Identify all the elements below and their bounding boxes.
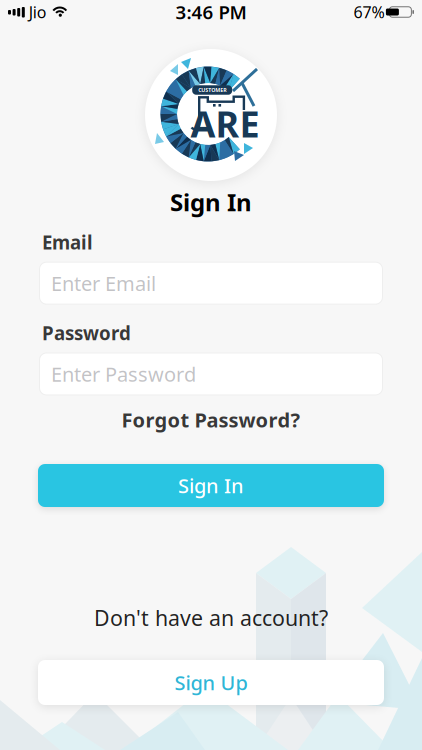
staticText: ARE (190, 100, 259, 147)
staticText: Jio (29, 1, 47, 23)
staticText: Don't have an account? (94, 604, 328, 632)
staticText: Sign In (170, 186, 252, 218)
staticText: Email (42, 230, 93, 255)
staticText: Enter Password (51, 361, 196, 387)
staticText: Sign In (178, 472, 244, 499)
staticText: Forgot Password? (121, 406, 300, 433)
staticText: Enter Email (51, 270, 156, 296)
staticText: Password (42, 321, 131, 345)
button[interactable]: Enter Email (39, 262, 383, 305)
staticText: Sign Up (174, 669, 247, 696)
staticText: 3:46 PM (175, 0, 246, 24)
staticText: 67% (353, 1, 384, 23)
button[interactable]: Sign Up (38, 660, 384, 705)
button[interactable]: Sign In (38, 464, 384, 507)
button[interactable]: Forgot Password? (121, 406, 300, 433)
button[interactable]: Enter Password (39, 352, 383, 395)
staticText: CUSTOMER (198, 86, 226, 94)
